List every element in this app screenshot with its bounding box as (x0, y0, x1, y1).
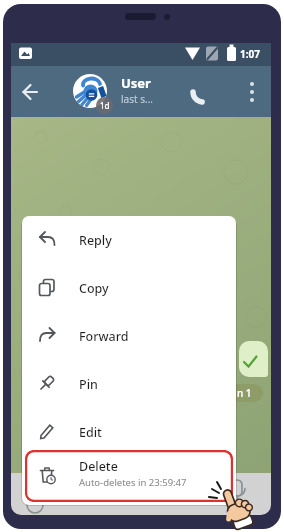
button[interactable]: Copy (22, 264, 236, 312)
button[interactable] (73, 74, 107, 108)
button[interactable]: Delete (25, 450, 233, 502)
staticText: Reply (79, 232, 112, 249)
staticText: Pin (79, 376, 98, 393)
button[interactable]: Reply (22, 216, 236, 264)
button[interactable]: Forward (22, 312, 236, 360)
button[interactable] (239, 79, 265, 105)
staticText: Delete (79, 458, 118, 475)
staticText: 1d (100, 100, 110, 111)
button[interactable] (19, 79, 45, 105)
staticText: Edit (79, 424, 102, 441)
staticText: Forward (79, 328, 129, 345)
staticText: User (121, 74, 151, 92)
staticText: last s... (121, 92, 154, 106)
staticText: Copy (79, 280, 109, 297)
staticText: 1:07 (240, 47, 260, 61)
staticText: Auto-deletes in 23:59:47 (79, 476, 187, 489)
button[interactable]: Edit (22, 408, 236, 456)
button[interactable]: Pin (22, 360, 236, 408)
staticText: n 1 (237, 386, 252, 400)
button[interactable] (190, 80, 216, 106)
